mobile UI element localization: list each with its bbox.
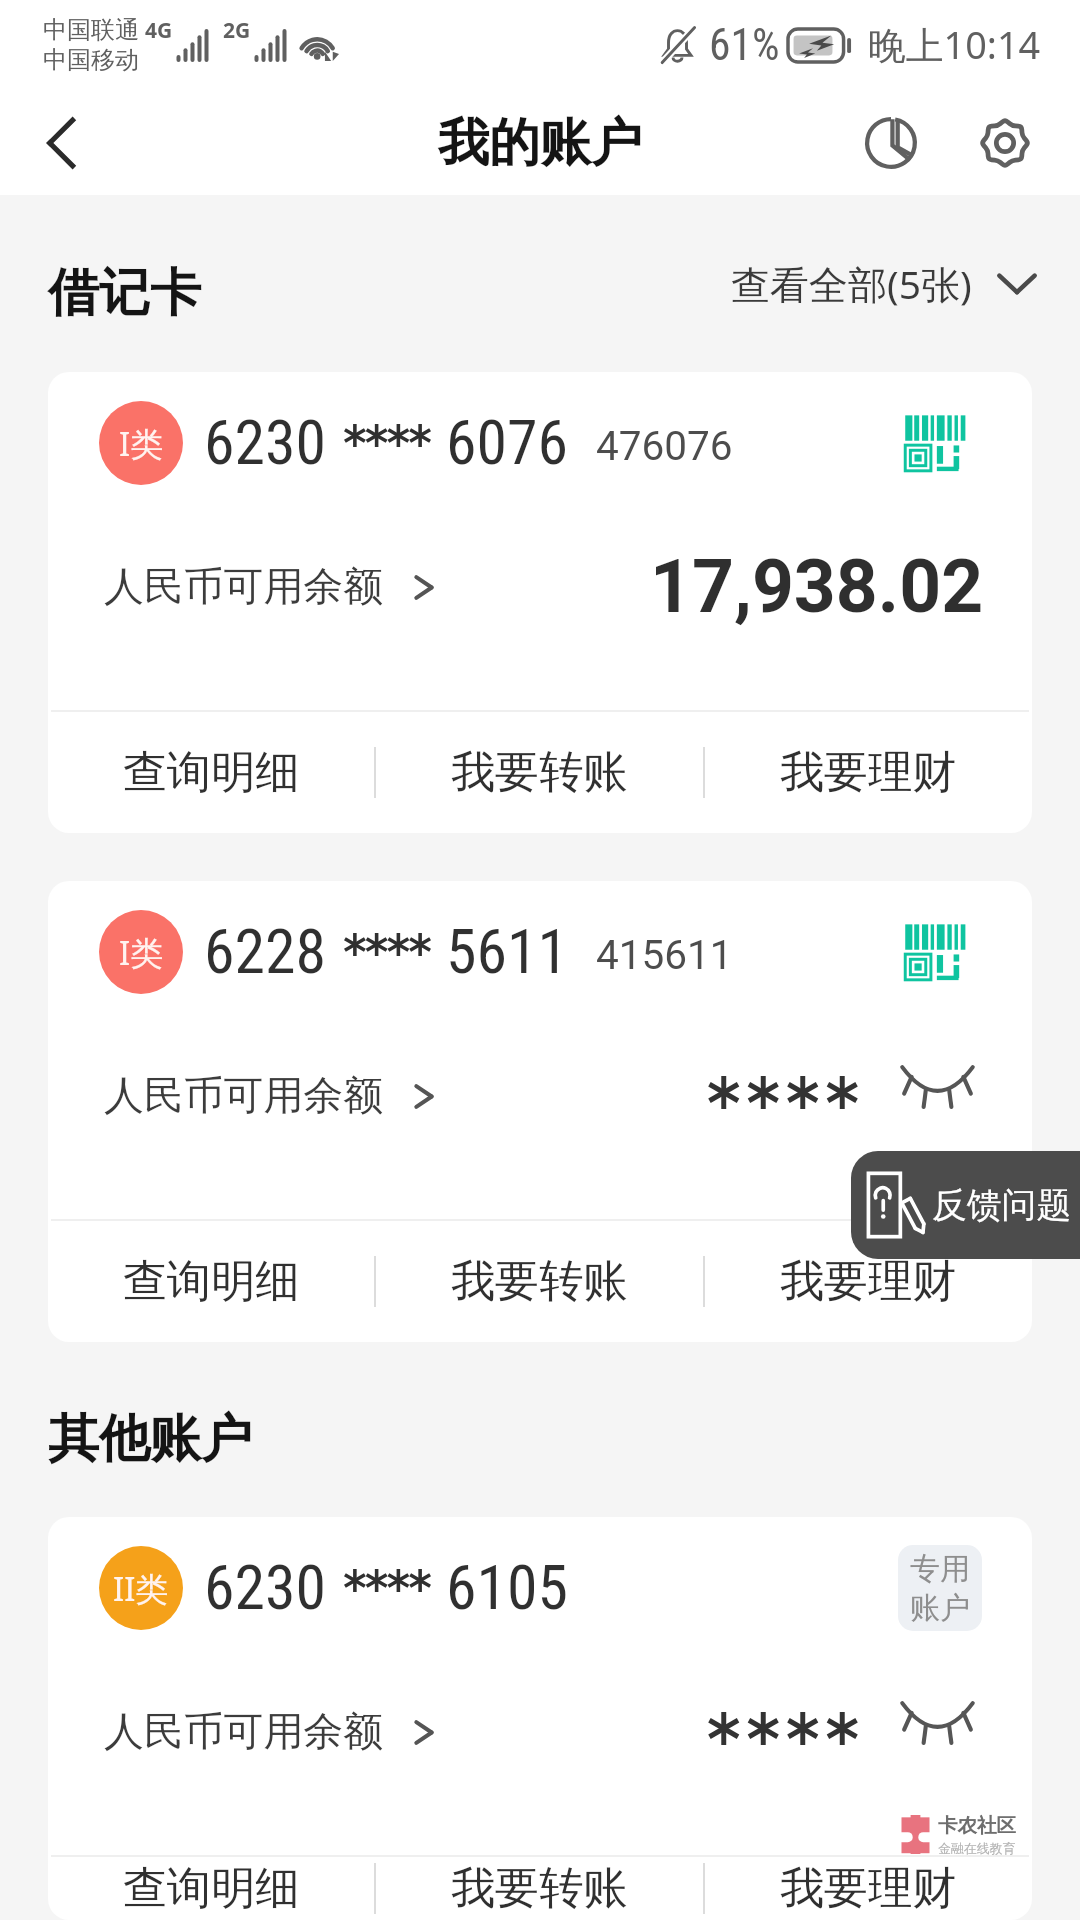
staticText: 5611 <box>446 916 569 988</box>
button[interactable]: 人民币可用余额 <box>104 562 435 612</box>
button[interactable]: 显示余额 <box>900 1064 975 1103</box>
button[interactable]: 人民币可用余额 <box>104 1707 435 1757</box>
button[interactable]: I类 <box>48 881 1032 1342</box>
button[interactable]: 查看全部(5张) <box>731 245 1038 322</box>
staticText: 查看全部(5张) <box>731 257 972 310</box>
staticText: 6230 <box>204 407 327 479</box>
staticText: 反馈问题 <box>932 1183 1072 1227</box>
staticText: 其他账户 <box>48 1407 252 1471</box>
button[interactable]: 专用 账户 <box>898 1545 982 1631</box>
staticText: 查询明细 <box>123 745 300 801</box>
staticText: 61% <box>709 20 780 71</box>
staticText: 6076 <box>446 407 569 479</box>
staticText: 17,938.02 <box>650 544 984 630</box>
button[interactable]: II类 <box>48 1517 1032 1920</box>
staticText: 我要理财 <box>780 1254 957 1310</box>
staticText: I类 <box>119 421 164 466</box>
button[interactable]: 查询明细 <box>48 1221 374 1342</box>
button[interactable]: I类 <box>48 372 1032 833</box>
staticText: 我要转账 <box>451 745 628 801</box>
button[interactable]: 反馈问题 <box>851 1151 1080 1259</box>
button[interactable]: 我要理财 <box>705 712 1032 833</box>
staticText: 卡农社区 <box>938 1813 1016 1838</box>
staticText: 查询明细 <box>123 1861 300 1917</box>
button[interactable]: 我要理财 <box>705 1857 1032 1920</box>
staticText: 我要理财 <box>780 1861 957 1917</box>
button[interactable]: 设置 <box>948 90 1062 195</box>
button[interactable]: 人民币可用余额 <box>104 1071 435 1121</box>
staticText: I类 <box>119 930 164 975</box>
button[interactable]: 资产统计 <box>834 90 948 195</box>
staticText: 借记卡 <box>48 261 201 325</box>
staticText: 6230 <box>204 1552 327 1624</box>
button[interactable]: 查询明细 <box>48 1857 374 1920</box>
button[interactable]: 我要理财 <box>705 1221 1032 1342</box>
button[interactable]: 我要转账 <box>376 712 703 833</box>
staticText: II类 <box>113 1566 169 1611</box>
staticText: 我要转账 <box>451 1861 628 1917</box>
staticText: 6228 <box>204 916 327 988</box>
staticText: 415611 <box>596 931 733 978</box>
button[interactable]: 扫码付款 <box>904 413 966 472</box>
staticText: 晚上10:14 <box>868 19 1041 71</box>
staticText: 6105 <box>446 1552 569 1624</box>
staticText: 476076 <box>596 422 733 469</box>
staticText: 人民币可用余额 <box>104 1707 384 1757</box>
button[interactable]: 显示余额 <box>900 1700 975 1739</box>
staticText: 2G <box>223 16 251 45</box>
staticText: 查询明细 <box>123 1254 300 1310</box>
staticText: 人民币可用余额 <box>104 1071 384 1121</box>
staticText: 专用 账户 <box>910 1550 970 1627</box>
staticText: 我要转账 <box>451 1254 628 1310</box>
staticText: 中国联通 <box>43 15 139 45</box>
staticText: 中国移动 <box>43 45 139 75</box>
staticText: 我的账户 <box>438 111 642 175</box>
staticText: 人民币可用余额 <box>104 562 384 612</box>
staticText: 金融在线教育 <box>938 1841 1016 1855</box>
button[interactable]: 扫码付款 <box>904 922 966 981</box>
button[interactable]: 我要转账 <box>376 1221 703 1342</box>
button[interactable]: 我要转账 <box>376 1857 703 1920</box>
button[interactable]: 查询明细 <box>48 712 374 833</box>
button[interactable]: 返回 <box>18 98 108 188</box>
staticText: 我要理财 <box>780 745 957 801</box>
staticText: 4G <box>145 16 173 45</box>
